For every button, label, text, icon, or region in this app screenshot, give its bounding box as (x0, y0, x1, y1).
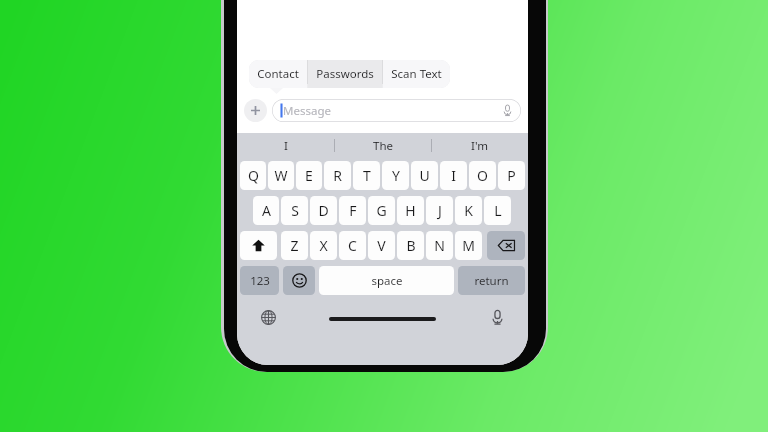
button[interactable]: P (498, 161, 525, 190)
button[interactable]: Backspace (487, 231, 525, 260)
button[interactable]: return (458, 266, 525, 295)
button[interactable]: E (296, 161, 322, 190)
button[interactable]: N (426, 231, 453, 260)
button[interactable]: Z (281, 231, 308, 260)
button[interactable]: Y (382, 161, 409, 190)
button[interactable]: Emoji (283, 266, 315, 295)
staticText: M (462, 236, 475, 255)
staticText: 123 (250, 273, 270, 289)
button[interactable]: The (334, 133, 431, 158)
staticText: U (419, 166, 430, 185)
staticText: C (348, 236, 357, 255)
staticText: P (507, 166, 516, 185)
button[interactable]: Q (240, 161, 266, 190)
button[interactable]: G (368, 196, 395, 225)
staticText: I (284, 138, 288, 154)
button[interactable]: K (455, 196, 482, 225)
staticText: F (349, 201, 357, 220)
staticText: L (494, 201, 502, 220)
staticText: space (371, 273, 403, 289)
button[interactable]: C (339, 231, 366, 260)
button[interactable]: R (324, 161, 351, 190)
staticText: R (333, 166, 342, 185)
button[interactable]: 123 (240, 266, 279, 295)
staticText: return (474, 273, 509, 289)
staticText: Y (392, 166, 400, 185)
staticText: I'm (471, 138, 488, 154)
button[interactable]: W (268, 161, 294, 190)
staticText: Z (290, 236, 299, 255)
staticText: W (274, 166, 288, 185)
staticText: Q (248, 166, 259, 185)
button[interactable]: Contact (257, 66, 299, 82)
staticText: H (405, 201, 416, 220)
button[interactable]: J (426, 196, 453, 225)
button[interactable]: Shift (240, 231, 277, 260)
staticText: Message (283, 103, 331, 119)
button[interactable]: D (310, 196, 337, 225)
staticText: N (434, 236, 445, 255)
button[interactable]: X (310, 231, 337, 260)
button[interactable]: S (281, 196, 308, 225)
staticText: A (262, 201, 271, 220)
staticText: I (451, 166, 456, 185)
button[interactable]: Dictation (486, 306, 508, 328)
button[interactable]: I (237, 133, 334, 158)
staticText: B (406, 236, 416, 255)
button[interactable]: F (339, 196, 366, 225)
button[interactable]: Switch keyboard (257, 306, 279, 328)
staticText: E (305, 166, 313, 185)
button[interactable]: U (411, 161, 438, 190)
button[interactable]: Passwords (316, 66, 374, 82)
staticText: Scan Text (391, 66, 442, 82)
button[interactable]: I'm (431, 133, 528, 158)
button[interactable]: M (455, 231, 482, 260)
button[interactable]: B (397, 231, 424, 260)
staticText: J (438, 201, 442, 220)
button[interactable]: V (368, 231, 395, 260)
button[interactable]: I (440, 161, 467, 190)
staticText: K (464, 201, 473, 220)
button[interactable]: Audio message (501, 104, 514, 117)
staticText: V (377, 236, 386, 255)
staticText: T (363, 166, 371, 185)
button[interactable]: H (397, 196, 424, 225)
button[interactable]: Scan Text (391, 66, 442, 82)
button[interactable]: space (319, 266, 454, 295)
staticText: The (373, 138, 393, 154)
staticText: D (318, 201, 329, 220)
button[interactable]: L (484, 196, 511, 225)
button[interactable]: T (353, 161, 380, 190)
button[interactable]: Add attachment (244, 99, 267, 122)
staticText: O (477, 166, 488, 185)
button[interactable]: O (469, 161, 496, 190)
button[interactable]: Message (272, 99, 521, 122)
staticText: Passwords (316, 66, 374, 82)
staticText: Contact (257, 66, 299, 82)
staticText: G (376, 201, 387, 220)
staticText: X (319, 236, 328, 255)
button[interactable]: A (253, 196, 279, 225)
staticText: S (291, 201, 299, 220)
